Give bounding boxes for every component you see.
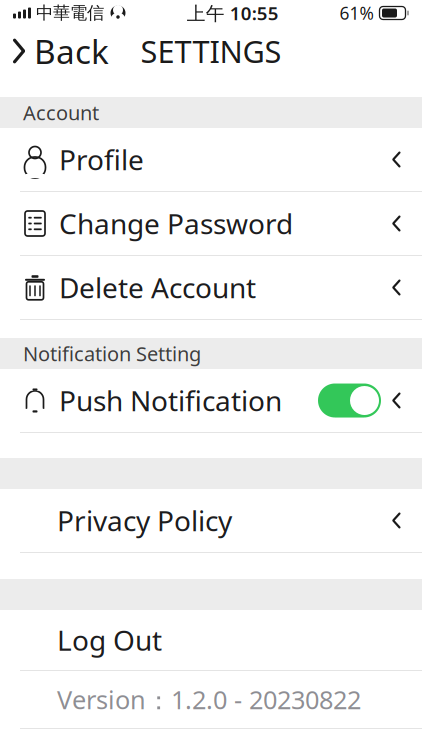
staticText: Notification Setting: [23, 340, 201, 367]
button[interactable]: Back: [0, 24, 109, 78]
button[interactable]: Push Notification: [0, 369, 422, 432]
staticText: Back: [34, 29, 109, 73]
staticText: Account: [23, 99, 99, 126]
staticText: Log Out: [57, 621, 162, 659]
staticText: Version：1.2.0 - 20230822: [57, 683, 361, 716]
staticText: Delete Account: [59, 269, 256, 306]
staticText: SETTINGS: [140, 31, 281, 71]
staticText: 中華電信: [36, 2, 104, 24]
staticText: Change Password: [59, 205, 293, 242]
button[interactable]: Profile: [0, 128, 422, 191]
staticText: Push Notification: [59, 382, 282, 419]
staticText: 61%: [339, 1, 373, 24]
staticText: Privacy Policy: [57, 502, 232, 539]
button[interactable]: Delete Account: [0, 256, 422, 319]
button[interactable]: Change Password: [0, 192, 422, 255]
staticText: 上午 10:55: [187, 1, 279, 25]
button[interactable]: Log Out: [0, 610, 422, 670]
button[interactable]: Privacy Policy: [0, 489, 422, 552]
staticText: Profile: [59, 141, 144, 178]
